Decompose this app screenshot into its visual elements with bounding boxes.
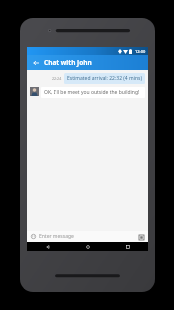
button[interactable]: Back — [27, 242, 68, 251]
staticText: 12:00 — [135, 49, 146, 54]
staticText: Chat with John — [44, 58, 92, 67]
button[interactable]: Back — [31, 58, 41, 68]
button[interactable]: Send — [137, 233, 145, 241]
staticText: Estimated arrival: 22:32 (4 mins) — [67, 75, 142, 82]
staticText: OK, I'll be meet you outside the buildin… — [44, 89, 140, 96]
button[interactable]: Estimated arrival: 22:32 (4 mins) — [64, 73, 145, 84]
button[interactable]: Emoji — [30, 233, 37, 240]
button[interactable]: Recents — [108, 242, 148, 251]
button[interactable]: Home — [68, 242, 108, 251]
button[interactable]: OK, I'll be meet you outside the buildin… — [41, 87, 145, 98]
staticText: 22:24 — [52, 76, 62, 81]
staticText: Enter message — [39, 233, 74, 240]
